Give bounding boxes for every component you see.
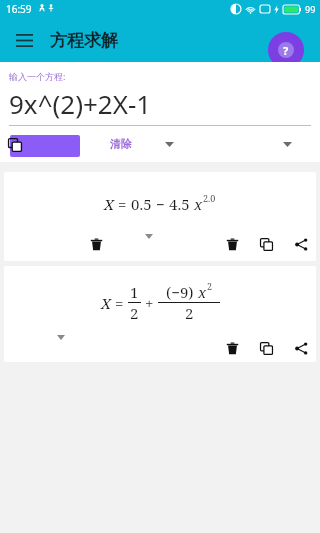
staticText: 99	[305, 3, 316, 15]
button[interactable]: X	[4, 172, 316, 261]
button[interactable]: Delete	[86, 234, 106, 254]
staticText: =	[114, 194, 131, 214]
button[interactable]: More options	[280, 137, 294, 151]
button[interactable]: 9x^(2)+2X-1	[9, 86, 320, 121]
button[interactable]: Solve	[10, 135, 80, 157]
staticText: 9x^(2)+2X-1	[9, 86, 152, 121]
staticText: X	[101, 293, 111, 313]
button[interactable]: Clear options	[162, 137, 176, 151]
button[interactable]: Copy	[256, 234, 276, 254]
staticText: 16:59	[6, 2, 32, 16]
staticText: −	[156, 194, 169, 214]
staticText: 0.5	[131, 194, 156, 214]
staticText: 方程求解	[50, 30, 118, 51]
staticText: 1	[130, 282, 139, 302]
staticText: 4.5	[169, 194, 194, 214]
staticText: ?	[283, 43, 289, 58]
staticText: =	[111, 293, 128, 313]
staticText: (−9)	[166, 282, 198, 302]
button[interactable]: Expand	[54, 330, 68, 344]
staticText: X	[104, 194, 114, 214]
button[interactable]: 清除	[110, 137, 132, 151]
staticText: 输入一个方程:	[9, 70, 66, 82]
button[interactable]: Share	[291, 234, 311, 254]
button[interactable]: Help	[268, 32, 304, 68]
button[interactable]: Delete	[222, 234, 242, 254]
staticText: x	[198, 282, 207, 302]
button[interactable]: Delete	[222, 338, 242, 358]
staticText: 2	[130, 303, 139, 323]
staticText: 2	[207, 280, 213, 292]
staticText: +	[141, 293, 158, 313]
staticText: 2	[185, 303, 194, 323]
button[interactable]: X	[4, 266, 316, 362]
button[interactable]: Expand	[142, 229, 156, 243]
button[interactable]: Menu	[10, 26, 38, 54]
staticText: 2.0	[203, 192, 216, 204]
staticText: x	[194, 194, 203, 214]
button[interactable]: Share	[291, 338, 311, 358]
button[interactable]: Copy	[256, 338, 276, 358]
